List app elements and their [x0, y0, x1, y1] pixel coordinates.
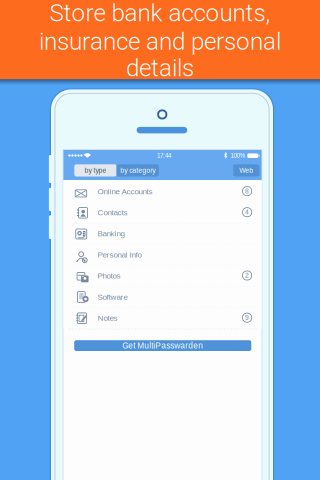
- staticText: insurance and personal: [39, 27, 281, 56]
- staticText: 2: [245, 272, 249, 279]
- staticText: 17:44: [157, 152, 171, 159]
- button[interactable]: Notes: [0, 0, 198, 21]
- staticText: Online Accounts: [98, 187, 153, 196]
- staticText: Notes: [98, 313, 118, 322]
- button[interactable]: Banking: [0, 0, 198, 21]
- staticText: Personal Info: [98, 250, 142, 259]
- staticText: 100%: [230, 152, 245, 159]
- staticText: Contacts: [98, 208, 128, 217]
- button[interactable]: Online Accounts: [0, 0, 198, 21]
- staticText: Web: [239, 166, 253, 174]
- staticText: Store bank accounts,: [49, 0, 270, 27]
- button[interactable]: Personal Info: [0, 0, 198, 21]
- button[interactable]: Photos: [0, 0, 198, 21]
- staticText: 9: [245, 314, 249, 321]
- button[interactable]: Software: [0, 0, 198, 21]
- staticText: Banking: [98, 229, 125, 238]
- staticText: Software: [98, 292, 128, 301]
- staticText: by category: [120, 166, 155, 174]
- staticText: 4: [245, 208, 249, 216]
- button[interactable]: Contacts: [0, 0, 198, 21]
- staticText: 8: [245, 187, 249, 195]
- staticText: Photos: [98, 271, 121, 280]
- button[interactable]: Get MultiPasswarden: [0, 0, 177, 11]
- staticText: Get MultiPasswarden: [122, 341, 203, 350]
- staticText: by type: [84, 166, 106, 174]
- staticText: details: [126, 54, 194, 82]
